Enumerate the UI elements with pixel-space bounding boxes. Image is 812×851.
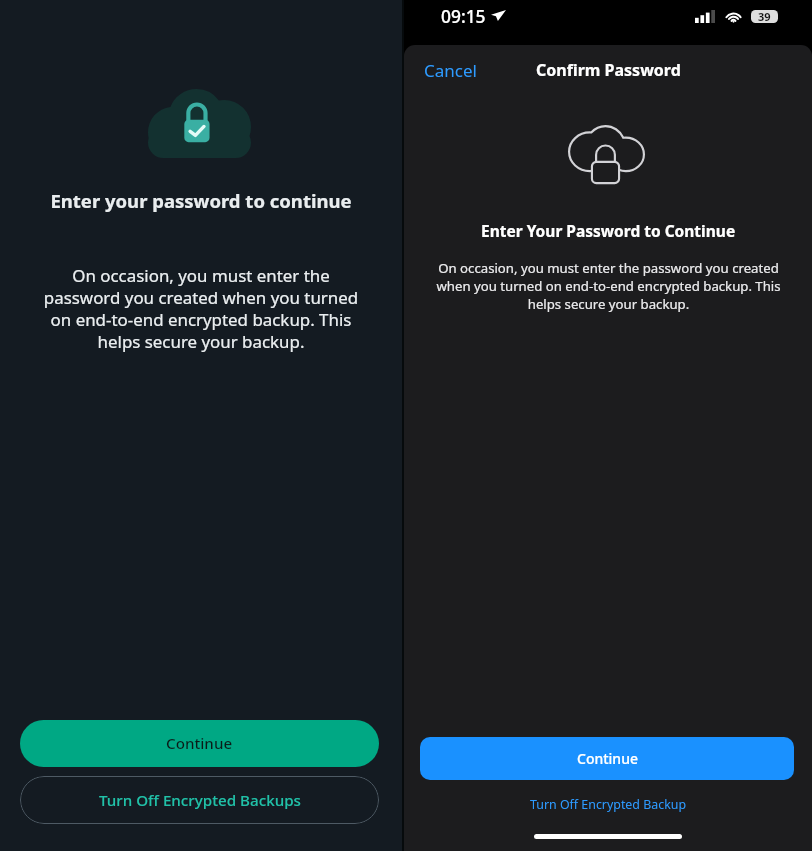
staticText: Turn Off Encrypted Backups [99,790,301,811]
staticText: Turn Off Encrypted Backup [530,796,687,813]
button[interactable]: Turn Off Encrypted Backups [20,776,379,824]
staticText: Enter Your Password to Continue [481,220,736,241]
staticText: Continue [577,749,638,768]
other: Cellular signal [695,10,715,23]
staticText: 39 [758,9,771,24]
button[interactable]: Turn Off Encrypted Backup [522,794,695,815]
staticText: Cancel [424,59,477,82]
button[interactable]: Continue [420,737,794,780]
other: Wi-Fi [726,11,741,22]
staticText: Confirm Password [536,59,681,81]
other: Location in use [491,10,506,21]
staticText: On occasion, you must enter the password… [40,264,362,353]
button[interactable]: Cancel [404,53,487,88]
staticText: Enter your password to continue [50,188,352,213]
staticText: 09:15 [441,4,486,28]
staticText: On occasion, you must enter the password… [436,259,781,313]
button[interactable]: Continue [20,720,379,767]
other: Battery 39 percent [751,9,778,24]
staticText: Continue [166,733,233,754]
